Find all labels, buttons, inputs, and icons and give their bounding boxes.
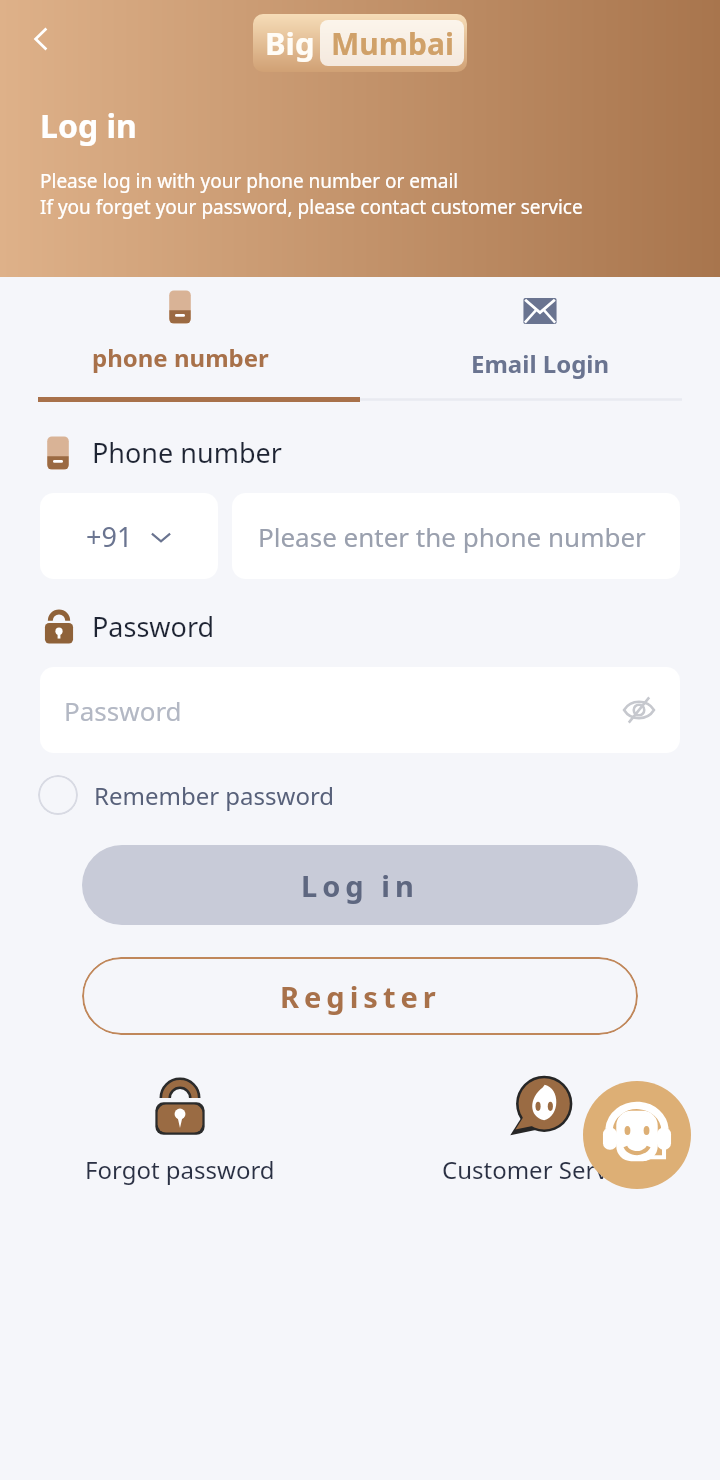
staticText: Mumbai	[331, 23, 454, 64]
button[interactable]: phone number	[0, 277, 360, 404]
button[interactable]: Remember password	[38, 775, 335, 815]
staticText: +91	[86, 518, 133, 555]
button[interactable]: Customer support	[583, 1081, 691, 1189]
staticText: Password	[92, 608, 215, 645]
staticText: phone number	[92, 341, 269, 374]
button[interactable]: +91	[40, 493, 218, 579]
staticText: Register	[280, 977, 441, 1016]
button[interactable]: Log in	[82, 845, 638, 925]
button[interactable]: Show password	[618, 689, 660, 731]
staticText: Big	[265, 22, 315, 64]
button[interactable]: Register	[82, 957, 638, 1035]
button[interactable]: Back	[12, 10, 70, 68]
staticText: Password	[64, 693, 182, 728]
staticText: Please log in with your phone number or …	[40, 168, 459, 194]
staticText: Forgot password	[85, 1153, 275, 1186]
button[interactable]: Please enter the phone number	[232, 493, 680, 579]
staticText: If you forget your password, please cont…	[40, 194, 583, 220]
button[interactable]: Forgot password	[85, 1069, 275, 1186]
staticText: Log in	[301, 866, 419, 905]
staticText: Log in	[40, 104, 137, 148]
button[interactable]: Email Login	[360, 277, 720, 404]
staticText: Remember password	[94, 779, 335, 812]
staticText: Please enter the phone number	[258, 519, 646, 554]
staticText: Customer Service	[442, 1153, 639, 1186]
staticText: Phone number	[92, 434, 282, 471]
button[interactable]: Customer Service	[442, 1069, 639, 1186]
staticText: Email Login	[471, 347, 610, 380]
button[interactable]: Password	[40, 667, 680, 753]
